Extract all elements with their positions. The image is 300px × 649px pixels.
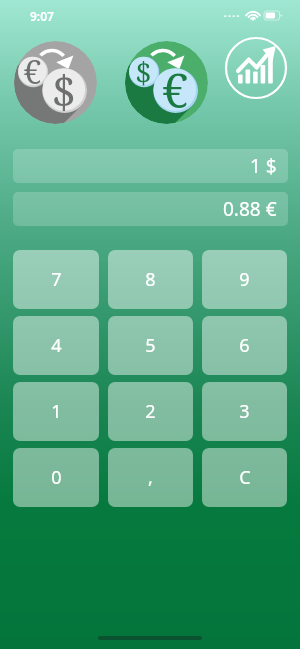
button[interactable]: 0.88 €	[13, 192, 288, 226]
staticText: 8	[145, 267, 156, 292]
staticText: 9	[239, 267, 250, 292]
button[interactable]: 0	[13, 448, 99, 507]
staticText: C	[239, 465, 251, 490]
button[interactable]: 9	[202, 250, 287, 309]
staticText: 4	[51, 333, 62, 358]
button[interactable]: 1	[13, 382, 99, 441]
button[interactable]: 4	[13, 316, 99, 375]
button[interactable]: ,	[108, 448, 193, 507]
button[interactable]: 3	[202, 382, 287, 441]
staticText: ,	[148, 465, 153, 490]
button[interactable]: 7	[13, 250, 99, 309]
button[interactable]: 2	[108, 382, 193, 441]
button[interactable]: 6	[202, 316, 287, 375]
button[interactable]: 8	[108, 250, 193, 309]
button[interactable]: Euro to Dollar converter	[14, 41, 97, 124]
button[interactable]: Exchange rate chart	[224, 36, 288, 100]
staticText: 5	[145, 333, 156, 358]
staticText: 6	[239, 333, 250, 358]
staticText: 3	[239, 399, 250, 424]
button[interactable]: 5	[108, 316, 193, 375]
staticText: 2	[145, 399, 156, 424]
staticText: 1 $	[250, 153, 277, 179]
staticText: 1	[51, 399, 62, 424]
staticText: 7	[51, 267, 62, 292]
staticText: 0	[51, 465, 62, 490]
button[interactable]: C	[202, 448, 287, 507]
staticText: 9:07	[30, 8, 54, 24]
staticText: 0.88 €	[223, 196, 277, 222]
button[interactable]: 1 $	[13, 149, 288, 183]
button[interactable]: Dollar to Euro converter	[125, 41, 208, 124]
